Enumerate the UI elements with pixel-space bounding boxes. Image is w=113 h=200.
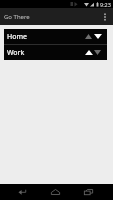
- button[interactable]: More options: [97, 8, 113, 25]
- button[interactable]: Home: [4, 29, 107, 44]
- staticText: Work: [7, 48, 84, 58]
- button[interactable]: Move down: [93, 45, 102, 60]
- button[interactable]: Recents: [79, 184, 97, 200]
- staticText: Home: [7, 32, 84, 42]
- staticText: 9:23: [100, 1, 111, 8]
- staticText: Go There: [4, 13, 30, 21]
- button[interactable]: Move up: [84, 45, 93, 60]
- button[interactable]: Home: [46, 184, 64, 200]
- button[interactable]: Move up: [84, 29, 93, 44]
- button[interactable]: Move down: [93, 29, 102, 44]
- button[interactable]: Work: [4, 45, 107, 60]
- button[interactable]: Back: [13, 184, 31, 200]
